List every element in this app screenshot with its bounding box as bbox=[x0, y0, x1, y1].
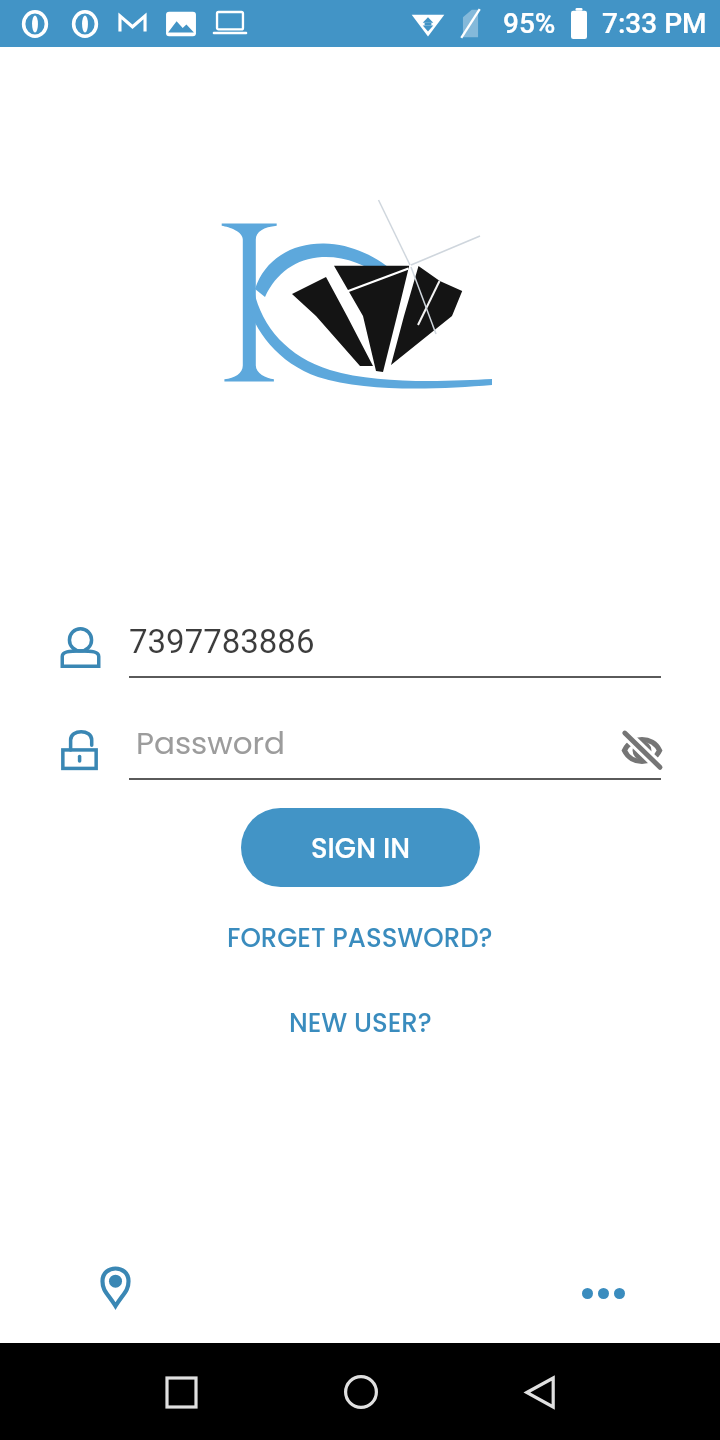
staticText: Password bbox=[136, 721, 286, 764]
button[interactable]: Recents bbox=[143, 1354, 219, 1430]
staticText: 7397783886 bbox=[129, 622, 315, 661]
button[interactable]: More options bbox=[572, 1262, 634, 1324]
staticText: NEW USER? bbox=[289, 1005, 432, 1041]
staticText: FORGET PASSWORD? bbox=[227, 920, 493, 956]
button[interactable]: Back bbox=[502, 1354, 578, 1430]
staticText: SIGN IN bbox=[311, 829, 411, 867]
button[interactable]: Show password bbox=[613, 721, 671, 779]
staticText: 7:33 PM bbox=[602, 7, 707, 40]
button[interactable]: Home bbox=[323, 1354, 399, 1430]
staticText: 95% bbox=[503, 7, 556, 40]
button[interactable]: Location bbox=[85, 1257, 145, 1317]
button[interactable]: FORGET PASSWORD? bbox=[213, 914, 507, 962]
button[interactable]: NEW USER? bbox=[275, 999, 446, 1047]
button[interactable]: SIGN IN bbox=[241, 808, 480, 887]
